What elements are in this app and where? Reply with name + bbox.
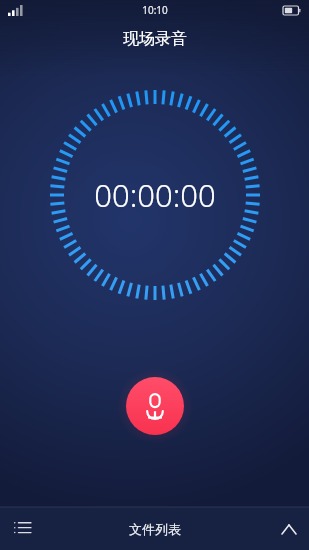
staticText: 现场录音 <box>123 29 187 49</box>
staticText: 00:00:00 <box>94 174 216 216</box>
button[interactable]: List <box>0 507 44 550</box>
button[interactable]: Expand <box>269 509 309 549</box>
button[interactable]: 文件列表 <box>129 521 181 537</box>
button[interactable]: Record <box>126 377 184 435</box>
staticText: 文件列表 <box>129 521 181 537</box>
staticText: 10:10 <box>142 3 168 17</box>
